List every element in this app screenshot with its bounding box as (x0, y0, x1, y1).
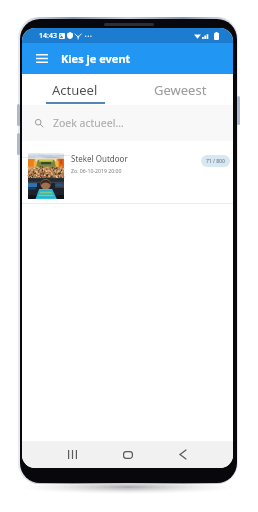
button[interactable]: Stekel Outdoor (22, 141, 233, 204)
staticText: Geweest (154, 81, 207, 99)
staticText: 14:43 (39, 31, 57, 41)
button[interactable]: Actueel (22, 74, 127, 105)
button[interactable]: Geweest (127, 74, 233, 105)
staticText: Zoek actueel... (53, 116, 124, 130)
staticText: Zo. 06-10-2019 20:00 (71, 167, 122, 174)
button[interactable]: Open navigation menu (33, 43, 51, 74)
button[interactable]: Home (100, 441, 155, 468)
button[interactable]: Back (155, 441, 210, 468)
staticText: Stekel Outdoor (71, 153, 128, 164)
staticText: Actueel (52, 81, 98, 99)
staticText: Kies je event (61, 51, 131, 66)
staticText: 71 / 800 (206, 158, 225, 165)
button[interactable]: Recent apps (45, 441, 100, 468)
button[interactable]: Zoek actueel... (22, 105, 233, 141)
